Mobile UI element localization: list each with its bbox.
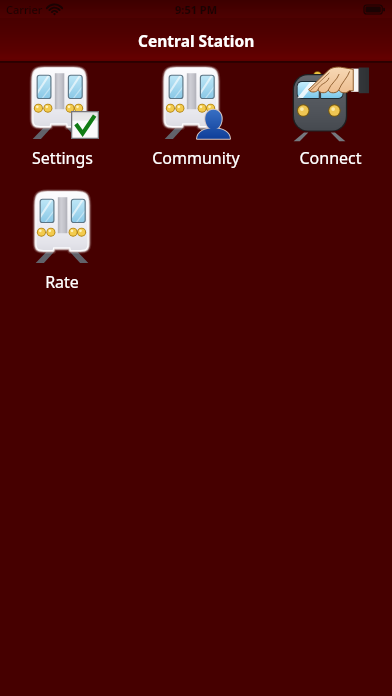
button[interactable]: Rate <box>3 187 121 311</box>
staticText: Settings <box>32 147 93 169</box>
other: Rate <box>3 187 121 271</box>
other: Settings <box>3 63 121 147</box>
button[interactable]: Connect <box>271 63 389 187</box>
staticText: Central Station <box>138 30 255 51</box>
button[interactable]: Community <box>137 63 255 187</box>
staticText: Community <box>152 147 240 169</box>
staticText: Connect <box>299 147 362 169</box>
staticText: Carrier <box>6 2 43 17</box>
staticText: Rate <box>45 271 79 293</box>
other: Community <box>137 63 255 147</box>
other: Connect <box>271 63 389 147</box>
staticText: 9:51 PM <box>175 2 218 17</box>
button[interactable]: Settings <box>3 63 121 187</box>
